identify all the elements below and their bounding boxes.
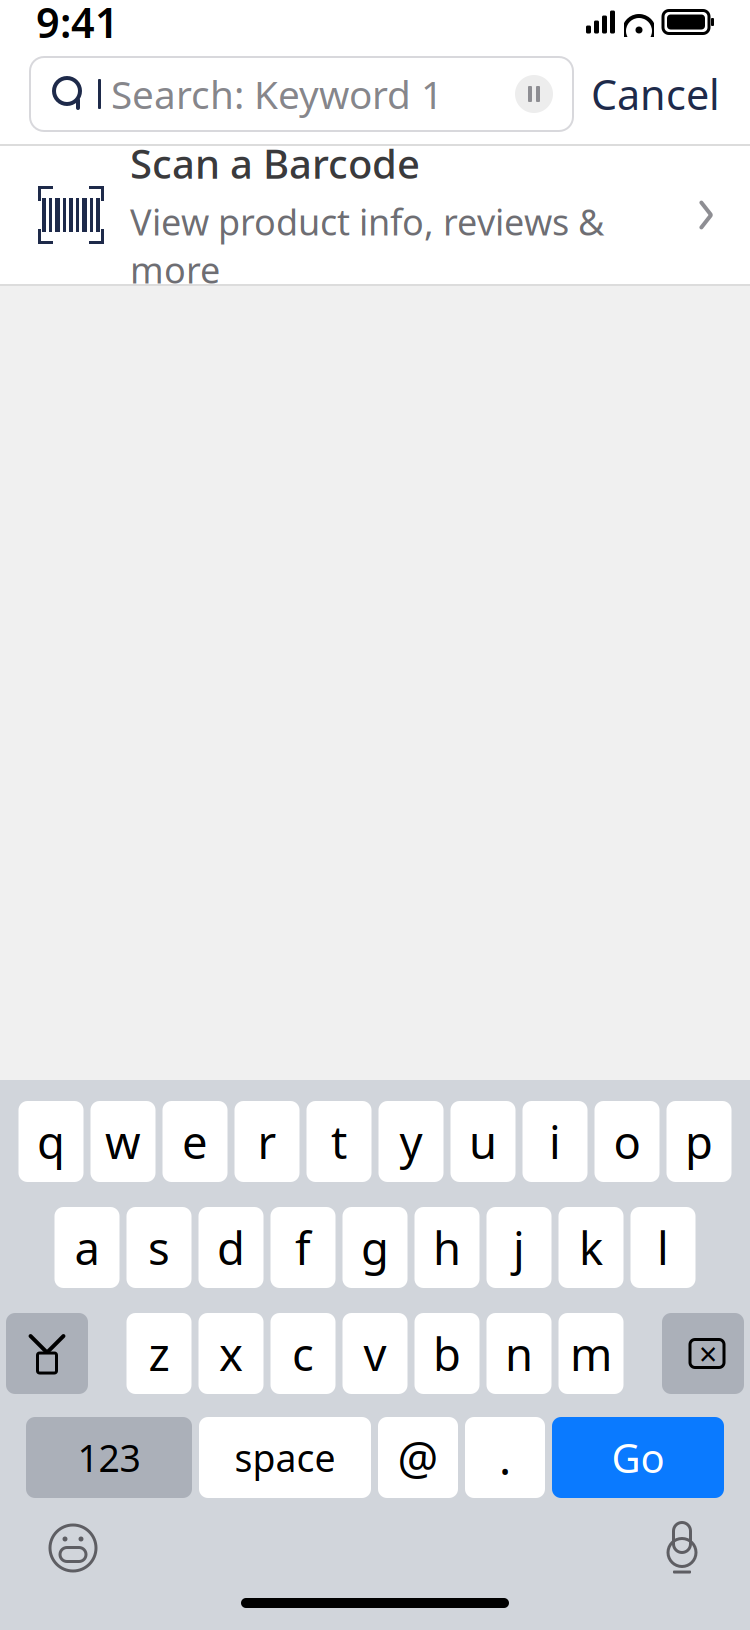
- button[interactable]: m: [558, 1313, 623, 1394]
- button[interactable]: f: [270, 1207, 335, 1288]
- staticText: t: [331, 1111, 347, 1172]
- staticText: space: [234, 1433, 335, 1482]
- staticText: d: [217, 1217, 245, 1278]
- button[interactable]: @: [378, 1417, 458, 1498]
- button[interactable]: x: [198, 1313, 263, 1394]
- staticText: k: [579, 1217, 603, 1278]
- staticText: o: [613, 1111, 640, 1172]
- button[interactable]: Shift: [6, 1313, 88, 1394]
- staticText: u: [469, 1111, 497, 1172]
- staticText: w: [105, 1111, 141, 1172]
- staticText: r: [257, 1111, 276, 1172]
- staticText: v: [363, 1323, 386, 1384]
- button[interactable]: Emoji: [48, 1523, 98, 1573]
- button[interactable]: e: [162, 1101, 227, 1182]
- button[interactable]: k: [558, 1207, 623, 1288]
- staticText: b: [433, 1323, 461, 1384]
- button[interactable]: p: [666, 1101, 731, 1182]
- button[interactable]: l: [630, 1207, 695, 1288]
- button[interactable]: space: [199, 1417, 371, 1498]
- staticText: 9:41: [36, 0, 119, 49]
- button[interactable]: h: [414, 1207, 479, 1288]
- button[interactable]: y: [378, 1101, 443, 1182]
- button[interactable]: c: [270, 1313, 335, 1394]
- button[interactable]: Scan a Barcode: [0, 146, 750, 284]
- staticText: z: [148, 1323, 169, 1384]
- staticText: h: [433, 1217, 461, 1278]
- staticText: Go: [611, 1431, 664, 1484]
- button[interactable]: Dictation: [662, 1522, 702, 1574]
- staticText: y: [399, 1111, 422, 1172]
- button[interactable]: a: [54, 1207, 119, 1288]
- button[interactable]: d: [198, 1207, 263, 1288]
- staticText: Cancel: [591, 67, 720, 121]
- staticText: @: [397, 1427, 438, 1488]
- staticText: n: [505, 1323, 533, 1384]
- button[interactable]: o: [594, 1101, 659, 1182]
- button[interactable]: u: [450, 1101, 515, 1182]
- staticText: Search: Keyword 1: [111, 68, 443, 120]
- button[interactable]: Cancel: [591, 67, 720, 121]
- staticText: e: [182, 1111, 208, 1172]
- button[interactable]: Go: [552, 1417, 724, 1498]
- button[interactable]: j: [486, 1207, 551, 1288]
- staticText: p: [685, 1111, 713, 1172]
- button[interactable]: t: [306, 1101, 371, 1182]
- button[interactable]: q: [18, 1101, 83, 1182]
- staticText: 123: [77, 1433, 140, 1482]
- button[interactable]: v: [342, 1313, 407, 1394]
- button[interactable]: z: [126, 1313, 191, 1394]
- staticText: l: [657, 1217, 669, 1278]
- staticText: g: [361, 1217, 389, 1278]
- staticText: f: [295, 1217, 311, 1278]
- staticText: m: [570, 1323, 612, 1384]
- staticText: j: [513, 1217, 525, 1278]
- button[interactable]: Delete: [662, 1313, 744, 1394]
- staticText: x: [219, 1323, 243, 1384]
- staticText: Scan a Barcode: [130, 137, 420, 190]
- button[interactable]: Clear search: [515, 75, 553, 113]
- button[interactable]: w: [90, 1101, 155, 1182]
- button[interactable]: .: [465, 1417, 545, 1498]
- staticText: s: [148, 1217, 170, 1278]
- staticText: .: [499, 1427, 511, 1488]
- button[interactable]: 123: [26, 1417, 192, 1498]
- staticText: View product info, reviews & more: [130, 198, 604, 293]
- staticText: q: [37, 1111, 65, 1172]
- button[interactable]: r: [234, 1101, 299, 1182]
- button[interactable]: n: [486, 1313, 551, 1394]
- button[interactable]: i: [522, 1101, 587, 1182]
- button[interactable]: s: [126, 1207, 191, 1288]
- button[interactable]: g: [342, 1207, 407, 1288]
- staticText: ×: [699, 1332, 717, 1375]
- staticText: c: [292, 1323, 314, 1384]
- staticText: i: [549, 1111, 561, 1172]
- button[interactable]: b: [414, 1313, 479, 1394]
- staticText: a: [74, 1217, 99, 1278]
